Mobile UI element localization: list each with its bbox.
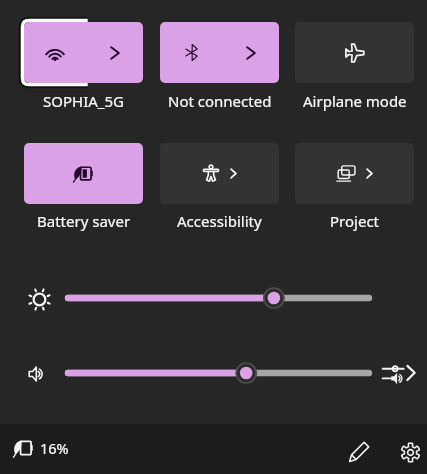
staticText: SOPHIA_5G xyxy=(43,91,124,111)
button[interactable]: Not connected xyxy=(160,22,222,83)
button[interactable]: SOPHIA_5G options xyxy=(86,22,143,83)
staticText: Airplane mode xyxy=(303,91,407,111)
other: Brightness xyxy=(28,288,51,311)
staticText: Accessibility xyxy=(177,211,262,231)
button[interactable]: 16% xyxy=(13,438,69,458)
staticText: Battery saver xyxy=(37,211,131,231)
staticText: Not connected xyxy=(168,91,272,111)
button[interactable]: Settings xyxy=(399,441,422,464)
button[interactable]: Edit quick settings xyxy=(348,440,371,463)
button[interactable]: Not connected options xyxy=(222,22,279,83)
other: Volume xyxy=(28,366,46,382)
button[interactable]: Battery saver xyxy=(24,143,143,204)
button[interactable]: SOPHIA_5G xyxy=(24,22,86,83)
button[interactable]: Volume mixer xyxy=(382,364,415,383)
staticText: Project xyxy=(330,211,379,231)
button[interactable]: Airplane mode xyxy=(295,22,414,83)
button[interactable]: Accessibility xyxy=(160,143,279,204)
button[interactable] xyxy=(55,359,382,387)
button[interactable]: Project xyxy=(295,143,414,204)
staticText: 16% xyxy=(40,438,69,458)
button[interactable] xyxy=(55,284,382,312)
